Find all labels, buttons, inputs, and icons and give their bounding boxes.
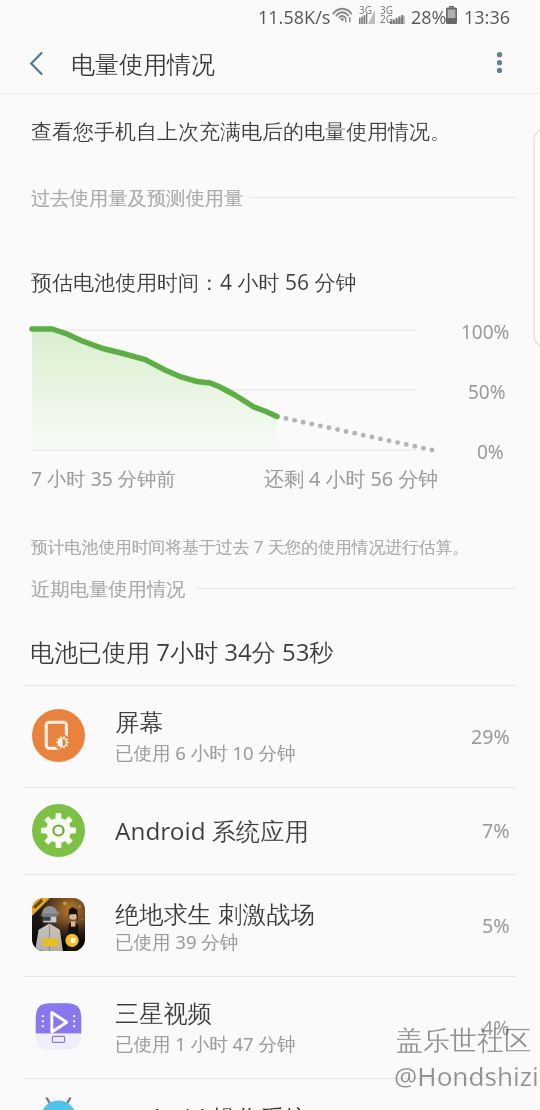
staticText: 还剩 4 小时 56 分钟 — [264, 465, 439, 492]
staticText: 已使用 6 小时 10 分钟 — [115, 740, 296, 765]
staticText: 7% — [482, 817, 510, 844]
staticText: 100% — [461, 319, 510, 345]
staticText: 13:36 — [464, 5, 511, 30]
staticText: Android 系统应用 — [115, 814, 309, 847]
button[interactable]: 绝地求生 刺激战场 — [0, 874, 540, 976]
staticText: 预估电池使用时间：4 小时 56 分钟 — [31, 268, 357, 297]
staticText: 50% — [468, 379, 506, 405]
staticText: 4% — [482, 1014, 510, 1041]
staticText: 近期电量使用情况 — [31, 577, 186, 601]
staticText: 电量使用情况 — [71, 50, 215, 80]
staticText: 过去使用量及预测使用量 — [31, 186, 244, 210]
staticText: 已使用 1 小时 47 分钟 — [115, 1031, 296, 1056]
button[interactable]: Back — [0, 36, 64, 88]
staticText: 绝地求生 刺激战场 — [115, 897, 315, 930]
staticText: 电池已使用 7小时 34分 53秒 — [30, 635, 334, 668]
staticText: Android 操作系统 — [115, 1101, 309, 1110]
staticText: 预计电池使用时间将基于过去 7 天您的使用情况进行估算。 — [31, 535, 470, 558]
staticText: 29% — [471, 723, 510, 750]
staticText: 7 小时 35 分钟前 — [31, 465, 176, 491]
staticText: 11.58K/s — [258, 5, 331, 30]
staticText: 盖乐世社区 — [396, 1024, 531, 1058]
staticText: 三星视频 — [115, 999, 212, 1029]
button[interactable]: 三星视频 — [0, 976, 540, 1078]
button[interactable]: 屏幕 — [0, 685, 540, 787]
button[interactable]: Android 系统应用 — [0, 787, 540, 874]
staticText: 屏幕 — [115, 708, 164, 738]
staticText: 3G — [380, 3, 393, 17]
staticText: @Hondshizi — [394, 1058, 539, 1093]
staticText: 2G — [380, 12, 393, 26]
staticText: 28% — [411, 5, 447, 30]
staticText: 3G — [359, 3, 372, 17]
staticText: 5% — [482, 912, 510, 939]
staticText: 已使用 39 分钟 — [115, 929, 239, 954]
staticText: 查看您手机自上次充满电后的电量使用情况。 — [31, 119, 451, 145]
staticText: 0% — [477, 439, 504, 465]
button[interactable]: Android 操作系统 — [0, 1078, 540, 1110]
button[interactable]: More options — [478, 36, 530, 88]
